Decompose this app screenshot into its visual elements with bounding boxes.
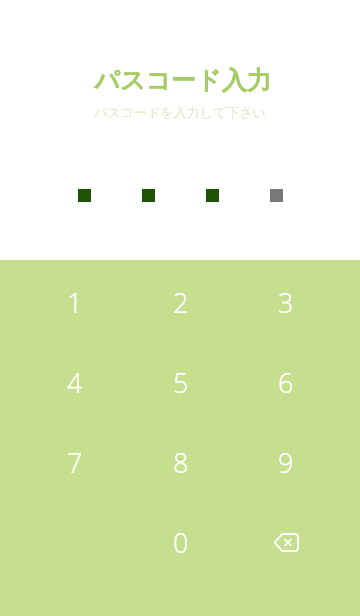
button[interactable]: 9 [233,422,338,502]
staticText: パスコードを入力して下さい [94,104,266,120]
staticText: 5 [173,364,189,401]
staticText: 7 [67,444,83,481]
button[interactable]: Delete [233,502,338,582]
button[interactable]: 5 [128,342,233,422]
staticText: 8 [173,444,189,481]
staticText: 3 [278,284,294,321]
button[interactable]: 0 [128,502,233,582]
button[interactable]: 7 [22,422,128,502]
button[interactable]: 1 [22,262,128,342]
button[interactable]: 4 [22,342,128,422]
staticText: 4 [67,364,83,401]
staticText: 9 [278,444,294,481]
staticText: パスコード入力 [94,65,272,96]
button[interactable]: 3 [233,262,338,342]
other: Passcode progress, 3 of 4 entered [78,189,283,202]
staticText: 2 [173,284,189,321]
staticText: 1 [67,284,83,321]
button[interactable]: 2 [128,262,233,342]
staticText: 0 [173,524,189,561]
button[interactable]: 8 [128,422,233,502]
staticText: 6 [278,364,294,401]
button[interactable]: 6 [233,342,338,422]
